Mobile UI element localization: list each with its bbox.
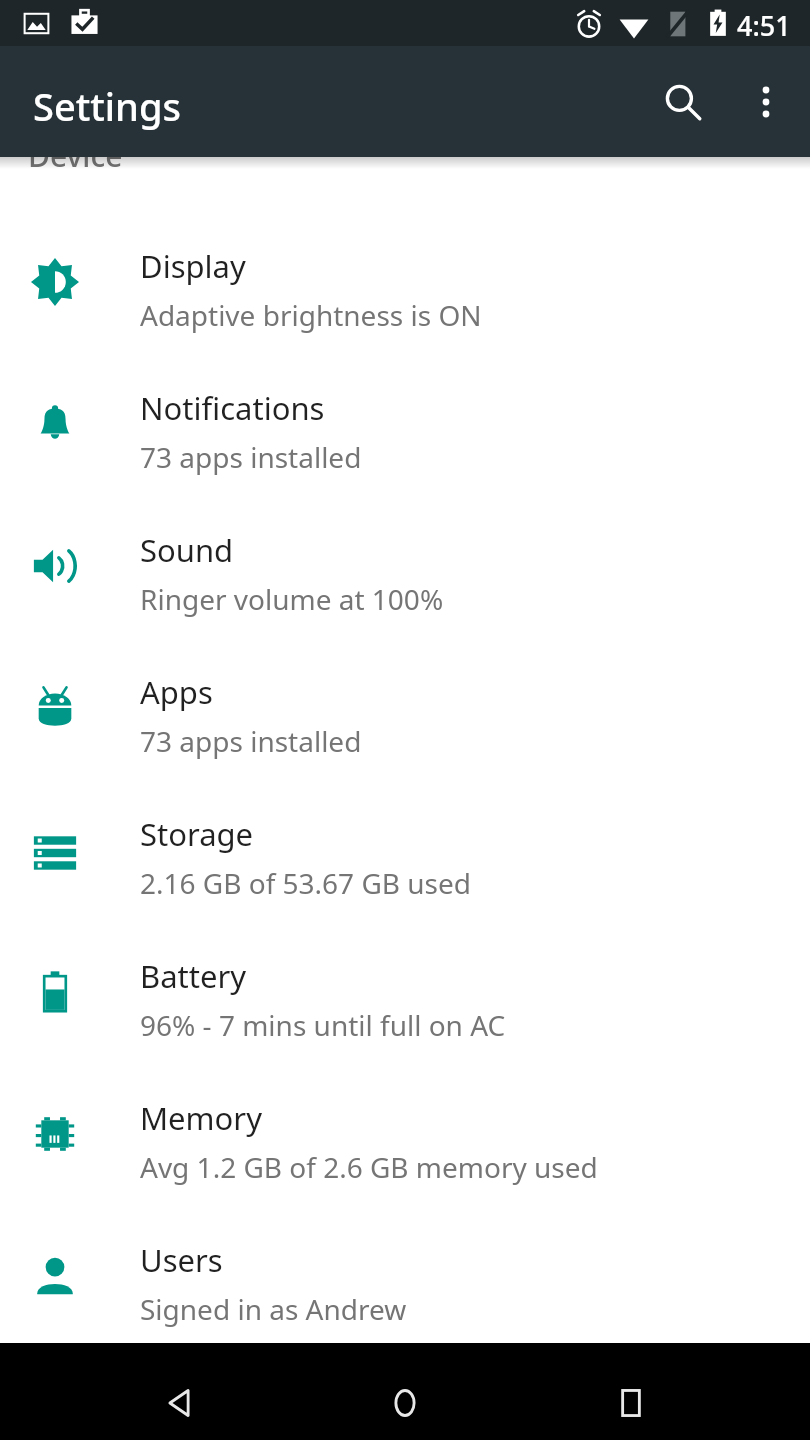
button[interactable]: Battery: [0, 922, 810, 1064]
staticText: 4:51: [737, 7, 791, 44]
staticText: Notifications: [140, 387, 325, 429]
staticText: Settings: [33, 80, 181, 132]
button[interactable]: Search: [641, 60, 725, 144]
staticText: Users: [140, 1239, 223, 1281]
staticText: Signed in as Andrew: [140, 1290, 407, 1328]
button[interactable]: Home: [364, 1362, 446, 1440]
staticText: Apps: [140, 671, 213, 713]
button[interactable]: Apps: [0, 638, 810, 780]
staticText: 96% - 7 mins until full on AC: [140, 1006, 506, 1044]
staticText: 73 apps installed: [140, 722, 362, 760]
staticText: Storage: [140, 813, 254, 855]
staticText: Ringer volume at 100%: [140, 580, 444, 618]
staticText: Adaptive brightness is ON: [140, 296, 482, 334]
button[interactable]: Sound: [0, 496, 810, 638]
staticText: Sound: [140, 529, 234, 571]
button[interactable]: More options: [724, 60, 808, 144]
staticText: Battery: [140, 955, 247, 997]
staticText: 73 apps installed: [140, 438, 362, 476]
button[interactable]: Users: [0, 1206, 810, 1343]
button[interactable]: Recent apps: [590, 1362, 672, 1440]
button[interactable]: Display: [0, 212, 810, 354]
staticText: Device: [28, 135, 123, 176]
staticText: Display: [140, 245, 246, 287]
button[interactable]: Back: [138, 1362, 220, 1440]
button[interactable]: Notifications: [0, 354, 810, 496]
button[interactable]: Storage: [0, 780, 810, 922]
staticText: Avg 1.2 GB of 2.6 GB memory used: [140, 1148, 598, 1186]
staticText: 2.16 GB of 53.67 GB used: [140, 864, 471, 902]
button[interactable]: Memory: [0, 1064, 810, 1206]
staticText: Memory: [140, 1097, 262, 1139]
